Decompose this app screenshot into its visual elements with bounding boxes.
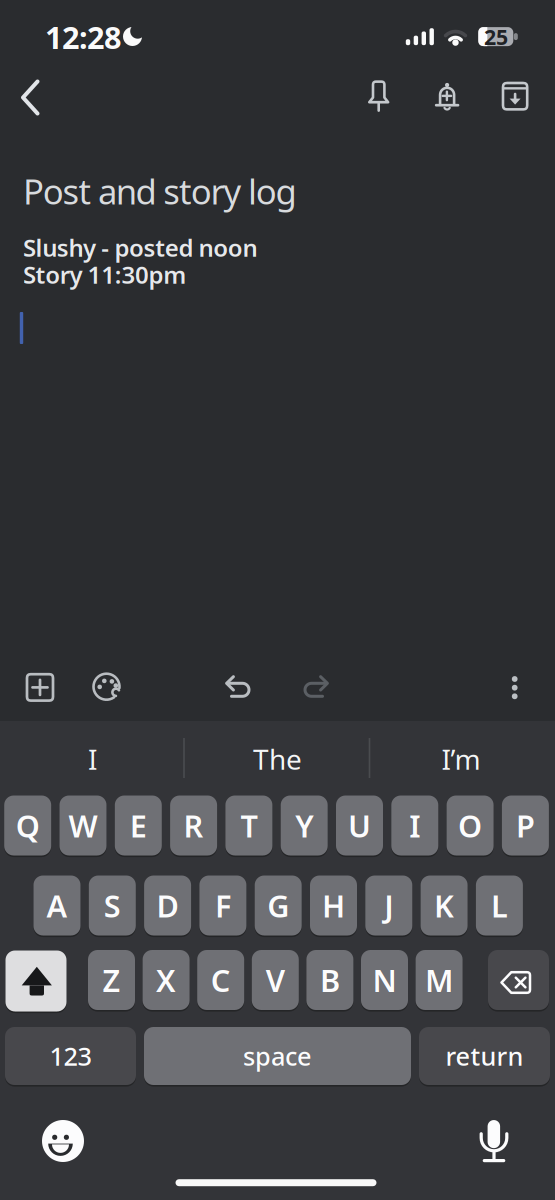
- button[interactable]: 123: [5, 1025, 136, 1086]
- staticText: Q: [16, 805, 40, 846]
- staticText: K: [434, 885, 454, 926]
- button[interactable]: Pin: [357, 74, 401, 118]
- button[interactable]: D: [144, 874, 191, 937]
- staticText: I: [409, 805, 420, 846]
- staticText: space: [243, 1039, 312, 1073]
- button[interactable]: X: [143, 948, 190, 1011]
- button[interactable]: U: [336, 794, 383, 857]
- button[interactable]: Theme: [84, 665, 128, 709]
- staticText: B: [320, 960, 340, 1000]
- button[interactable]: More: [493, 666, 537, 710]
- button[interactable]: Back: [9, 75, 53, 119]
- staticText: P: [516, 805, 535, 846]
- button[interactable]: Y: [281, 794, 328, 857]
- button[interactable]: A: [33, 874, 80, 937]
- button[interactable]: V: [252, 948, 299, 1011]
- button[interactable]: Q: [4, 794, 51, 857]
- button[interactable]: The: [192, 735, 362, 783]
- staticText: return: [445, 1039, 523, 1073]
- staticText: 12:28: [45, 17, 122, 57]
- button[interactable]: P: [502, 794, 549, 857]
- staticText: The: [253, 740, 302, 778]
- staticText: N: [372, 960, 396, 1000]
- staticText: F: [215, 885, 231, 926]
- button[interactable]: I: [391, 794, 438, 857]
- button[interactable]: Add: [18, 665, 62, 709]
- staticText: R: [184, 805, 204, 846]
- button[interactable]: space: [144, 1025, 411, 1086]
- staticText: 25: [484, 23, 508, 51]
- button[interactable]: Undo: [216, 666, 260, 710]
- staticText: D: [157, 885, 179, 926]
- button[interactable]: K: [421, 874, 468, 937]
- staticText: L: [491, 885, 508, 926]
- button[interactable]: C: [197, 948, 244, 1011]
- button[interactable]: M: [416, 948, 463, 1011]
- button[interactable]: W: [59, 794, 106, 857]
- staticText: Y: [295, 805, 313, 846]
- button[interactable]: T: [225, 794, 272, 857]
- staticText: Post and story log: [23, 168, 297, 214]
- staticText: J: [384, 885, 393, 926]
- staticText: Z: [102, 960, 120, 1000]
- button[interactable]: F: [199, 874, 246, 937]
- button[interactable]: return: [419, 1025, 550, 1086]
- button[interactable]: Redo: [294, 666, 338, 710]
- button[interactable]: Add reminder: [425, 74, 469, 118]
- staticText: H: [322, 885, 345, 926]
- staticText: C: [211, 960, 231, 1000]
- button[interactable]: Archive: [493, 74, 537, 118]
- button[interactable]: Delete: [488, 948, 549, 1011]
- button[interactable]: H: [310, 874, 357, 937]
- button[interactable]: J: [365, 874, 412, 937]
- staticText: U: [348, 805, 371, 846]
- staticText: I: [88, 740, 97, 778]
- staticText: W: [68, 805, 97, 846]
- button[interactable]: Dictation: [464, 1110, 524, 1170]
- button[interactable]: N: [361, 948, 408, 1011]
- button[interactable]: Shift: [5, 949, 66, 1013]
- staticText: S: [104, 885, 121, 926]
- button[interactable]: B: [306, 948, 353, 1011]
- staticText: 123: [49, 1039, 91, 1073]
- button[interactable]: R: [170, 794, 217, 857]
- button[interactable]: Z: [88, 948, 135, 1011]
- button[interactable]: I’m: [376, 735, 546, 783]
- staticText: Slushy - posted noon: [23, 232, 257, 263]
- staticText: X: [156, 960, 176, 1000]
- button[interactable]: E: [115, 794, 162, 857]
- staticText: I’m: [441, 740, 480, 778]
- staticText: Story 11:30pm: [23, 259, 186, 290]
- button[interactable]: O: [447, 794, 494, 857]
- staticText: M: [425, 960, 453, 1000]
- staticText: V: [266, 960, 285, 1000]
- staticText: A: [46, 885, 67, 926]
- staticText: G: [267, 885, 289, 926]
- button[interactable]: L: [476, 874, 523, 937]
- button[interactable]: I: [7, 735, 177, 783]
- staticText: O: [458, 805, 482, 846]
- staticText: T: [240, 805, 257, 846]
- button[interactable]: S: [89, 874, 136, 937]
- button[interactable]: G: [255, 874, 302, 937]
- button[interactable]: Emoji: [33, 1111, 93, 1171]
- staticText: E: [130, 805, 147, 846]
